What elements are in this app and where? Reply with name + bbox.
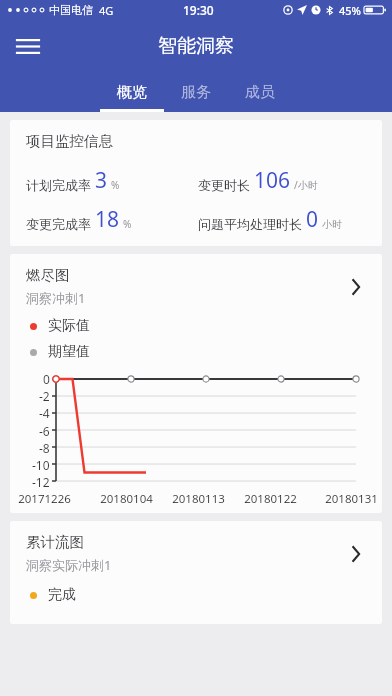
staticText: -12 (32, 474, 50, 489)
button[interactable]: 服务 (164, 72, 228, 112)
staticText: 106 (254, 166, 291, 195)
staticText: -8 (39, 440, 50, 455)
staticText: 20180104 (100, 491, 153, 507)
button[interactable]: Menu (8, 26, 48, 66)
staticText: 实际值 (48, 317, 90, 335)
staticText: 变更完成率 (26, 216, 91, 232)
staticText: /小时 (294, 178, 318, 192)
staticText: 累计流图 (26, 533, 84, 551)
staticText: -6 (39, 423, 50, 438)
staticText: -2 (39, 388, 50, 403)
other: Details (344, 542, 368, 566)
staticText: 19:30 (183, 2, 214, 18)
staticText: 4G (99, 3, 114, 18)
button[interactable]: 概览 (100, 72, 164, 112)
button[interactable]: 累计流图 (10, 521, 382, 580)
staticText: 计划完成率 (26, 177, 91, 193)
staticText: -4 (39, 405, 50, 420)
staticText: 中国电信 (49, 3, 93, 17)
staticText: 0 (43, 371, 50, 386)
staticText: 20180113 (172, 491, 225, 507)
staticText: 20171226 (18, 491, 71, 507)
staticText: -10 (32, 457, 50, 472)
other: Details (344, 275, 368, 299)
staticText: 期望值 (48, 343, 90, 361)
staticText: 燃尽图 (26, 266, 70, 284)
staticText: 3 (95, 166, 108, 195)
staticText: 问题平均处理时长 (198, 216, 302, 232)
staticText: 洞察实际冲刺1 (26, 556, 112, 574)
staticText: 0 (306, 205, 319, 234)
staticText: 变更时长 (198, 177, 250, 193)
staticText: 45% (339, 3, 361, 18)
button[interactable]: 燃尽图 (10, 254, 382, 313)
staticText: 智能洞察 (158, 34, 234, 58)
staticText: 概览 (117, 83, 147, 102)
staticText: 完成 (48, 586, 76, 604)
staticText: 20180122 (244, 491, 297, 507)
button[interactable]: 成员 (228, 72, 292, 112)
staticText: 20180131 (325, 491, 378, 507)
staticText: 小时 (322, 218, 342, 231)
staticText: 18 (95, 205, 120, 234)
staticText: 洞察冲刺1 (26, 289, 86, 307)
staticText: 服务 (181, 83, 211, 102)
staticText: 成员 (245, 83, 275, 102)
staticText: % (111, 178, 120, 192)
staticText: 项目监控信息 (26, 132, 113, 150)
staticText: % (123, 217, 132, 231)
